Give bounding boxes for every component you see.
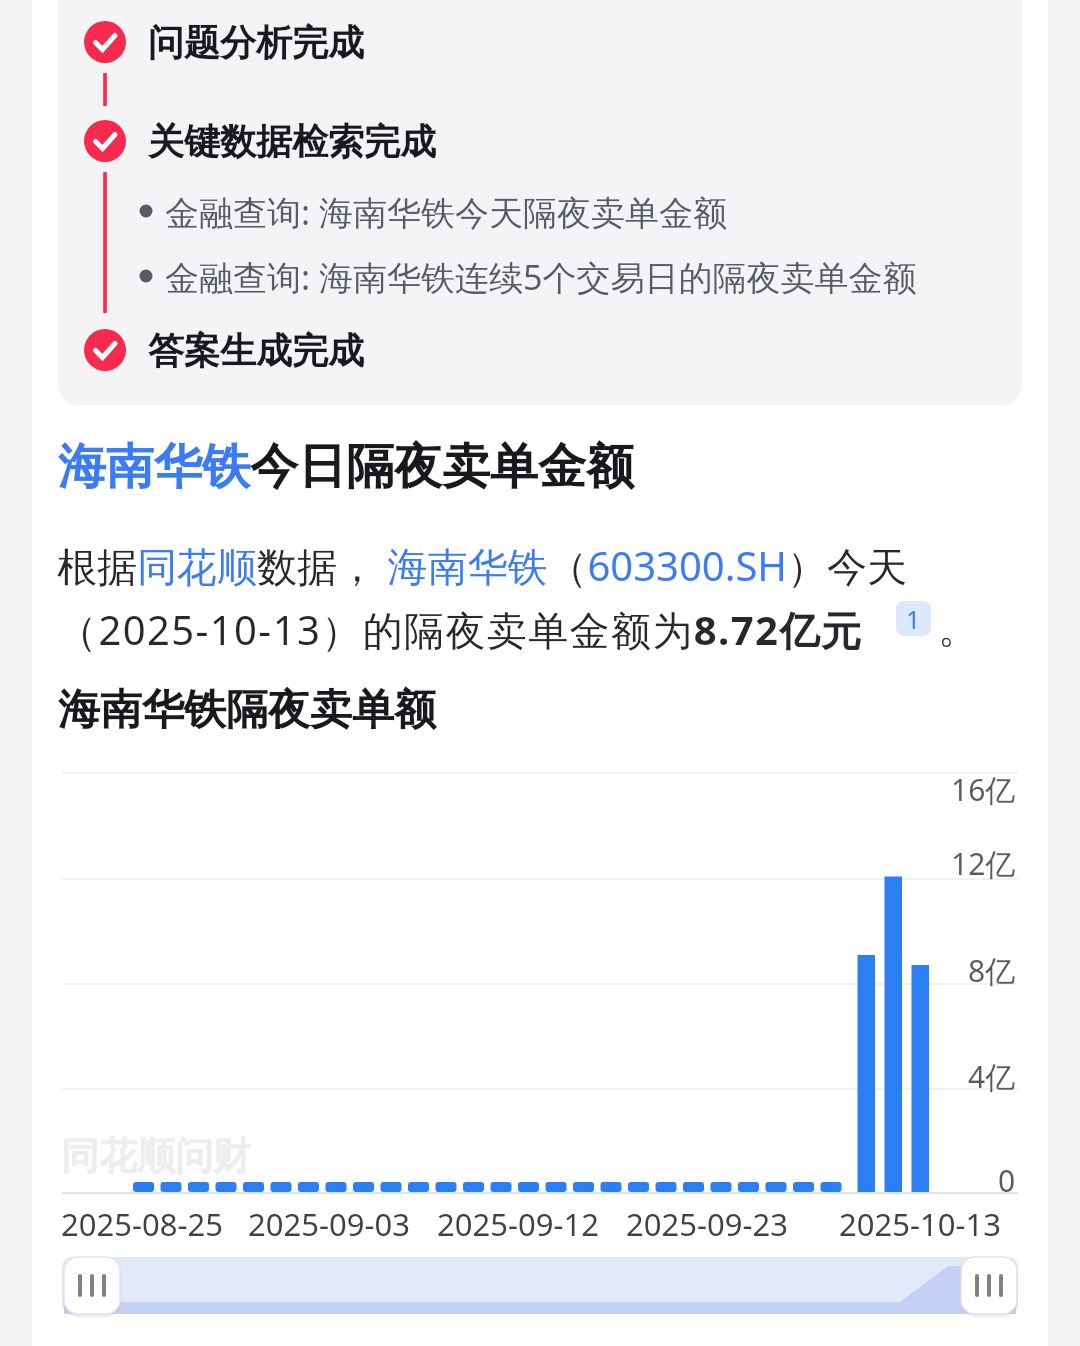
button[interactable] xyxy=(58,0,1022,405)
staticText: 答案生成完成 xyxy=(148,328,364,372)
staticText: 。 xyxy=(938,603,978,653)
staticText: 2025-09-12 xyxy=(437,1203,599,1245)
staticText: 2025-08-25 xyxy=(61,1203,223,1245)
staticText: 同花顺问财 xyxy=(61,1132,251,1178)
staticText: 海南华铁今日隔夜卖单金额 xyxy=(58,437,634,497)
staticText: 16亿 xyxy=(951,769,1016,810)
staticText: 2025-10-13 xyxy=(839,1203,1001,1245)
staticText: 问题分析完成 xyxy=(148,20,364,64)
staticText: 2025-09-23 xyxy=(626,1203,788,1245)
staticText: （2025-10-13）的隔夜卖单金额为8.72亿元 xyxy=(57,602,863,654)
staticText: 12亿 xyxy=(951,843,1016,884)
button[interactable]: 1 xyxy=(896,601,931,636)
staticText: 4亿 xyxy=(968,1056,1016,1097)
staticText: 金融查询: 海南华铁连续5个交易日的隔夜卖单金额 xyxy=(165,254,917,298)
staticText: 1 xyxy=(906,602,921,636)
staticText: 金融查询: 海南华铁今天隔夜卖单金额 xyxy=(165,189,727,233)
staticText: 关键数据检索完成 xyxy=(148,119,436,163)
staticText: 8亿 xyxy=(968,950,1016,991)
staticText: 0 xyxy=(998,1160,1016,1201)
staticText: 海南华铁隔夜卖单额 xyxy=(58,684,436,737)
staticText: 根据同花顺数据， 海南华铁（603300.SH）今天 xyxy=(57,538,907,590)
staticText: 2025-09-03 xyxy=(248,1203,410,1245)
